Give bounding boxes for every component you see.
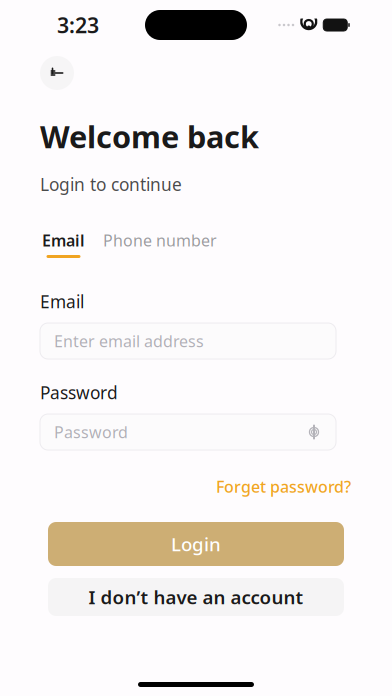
staticText: Phone number [103, 230, 217, 251]
button[interactable]: Phone number [101, 230, 219, 258]
staticText: Password [54, 421, 128, 443]
staticText: Login [171, 532, 221, 556]
staticText: Password [40, 381, 118, 404]
button[interactable]: Forget password? [216, 472, 351, 501]
staticText: Email [40, 290, 84, 313]
button[interactable]: Email [40, 230, 87, 258]
staticText: Forget password? [216, 476, 351, 497]
staticText: 3:23 [57, 11, 99, 39]
button[interactable]: Login [48, 522, 344, 566]
staticText: I don’t have an account [88, 585, 303, 609]
staticText: Welcome back [40, 116, 259, 157]
button[interactable]: I don’t have an account [48, 578, 344, 616]
staticText: Enter email address [54, 330, 204, 352]
staticText: Login to continue [40, 173, 182, 196]
button[interactable]: Enter email address [40, 323, 336, 359]
button[interactable]: Password [40, 414, 336, 450]
staticText: Email [42, 230, 85, 251]
button[interactable]: Back [40, 56, 74, 90]
